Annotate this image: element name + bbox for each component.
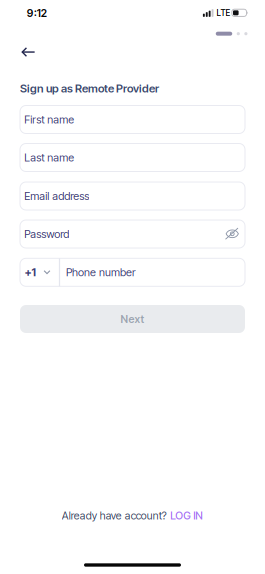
button[interactable]: Log in [170,507,203,524]
staticText: Last name [24,151,74,164]
staticText: Sign up as Remote Provider [20,81,159,95]
staticText: Next [120,312,144,325]
staticText: LTE [217,8,231,18]
staticText: Password [24,227,69,241]
button[interactable]: Next [20,305,245,333]
button[interactable]: Show password [225,220,245,248]
staticText: First name [24,113,74,126]
staticText: Email address [24,189,89,203]
button[interactable]: Country code +1 [20,258,50,286]
staticText: LOG IN [170,509,203,522]
staticText: 9:12 [27,6,47,19]
staticText: Phone number [66,266,136,279]
staticText: +1 [24,265,35,279]
button[interactable]: Back [14,39,43,65]
staticText: Already have account? [62,509,167,522]
